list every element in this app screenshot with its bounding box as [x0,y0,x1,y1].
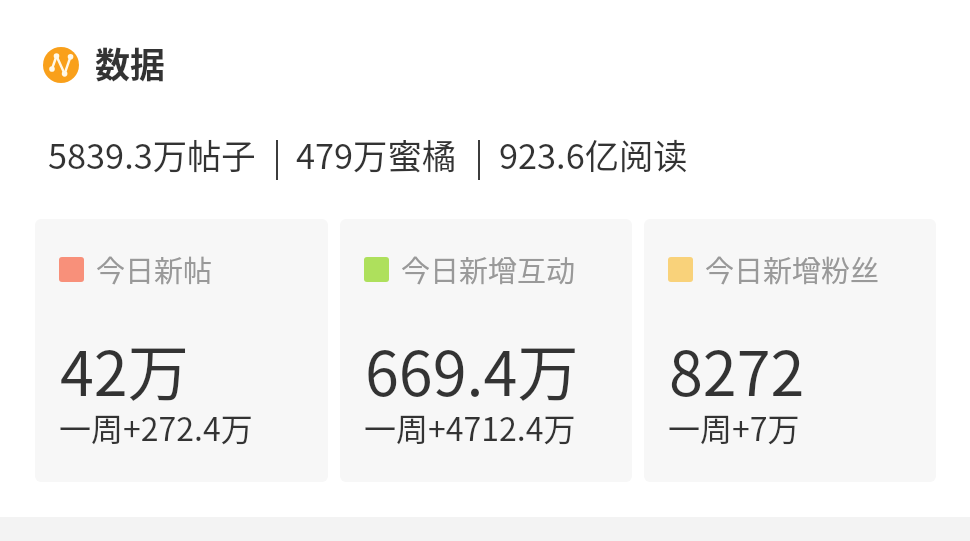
staticText: 923.6亿阅读 [499,129,688,179]
staticText: 一周+272.4万 [59,404,253,450]
staticText: 5839.3万帖子 [48,129,256,179]
staticText: 一周+7万 [668,404,800,450]
button[interactable]: 今日新增互动 [340,219,632,482]
staticText: 8272 [669,325,805,413]
button[interactable]: Logo [43,37,166,88]
staticText: 一周+4712.4万 [364,404,576,450]
staticText: 今日新帖 [96,248,213,290]
staticText: 数据 [95,37,166,88]
button[interactable]: 今日新增粉丝 [644,219,936,482]
staticText: 479万蜜橘 [296,129,456,179]
staticText: 669.4万 [365,325,579,413]
button[interactable]: 今日新帖 [35,219,328,482]
staticText: 今日新增互动 [401,248,576,290]
other: Logo [43,47,79,83]
staticText: 今日新增粉丝 [705,248,880,290]
staticText: 42万 [60,325,189,413]
